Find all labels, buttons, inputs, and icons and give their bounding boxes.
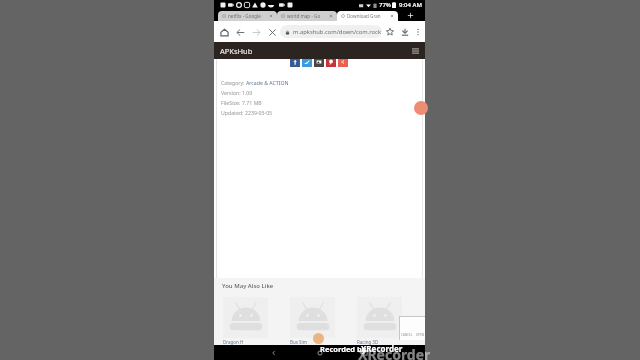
button[interactable]: More: [338, 57, 348, 67]
staticText: CANCEL: [401, 333, 413, 337]
button[interactable]: Stop loading: [264, 23, 280, 41]
staticText: 7.71 MB: [242, 99, 262, 106]
button[interactable]: More options: [412, 23, 423, 41]
button[interactable]: Dragon H: [223, 297, 268, 345]
button[interactable]: netflix - Google: [218, 11, 277, 21]
button[interactable]: Menu: [410, 45, 421, 56]
staticText: netflix - Google: [228, 13, 269, 19]
button[interactable]: New tab: [398, 10, 423, 21]
staticText: XRecorder: [358, 345, 431, 360]
button[interactable]: Home: [307, 345, 333, 360]
staticText: Category:: [221, 79, 246, 86]
staticText: FileSize:: [221, 99, 242, 106]
staticText: Arcade & ACTION: [246, 79, 289, 86]
button[interactable]: Back: [232, 23, 248, 41]
staticText: Racing 3D: [357, 339, 379, 345]
button[interactable]: APKsHub: [220, 42, 253, 59]
staticText: 77%: [379, 1, 391, 9]
button[interactable]: Chat: [414, 101, 428, 115]
button[interactable]: Share: [314, 57, 324, 67]
staticText: Version:: [221, 89, 242, 96]
staticText: APKsHub: [220, 46, 253, 56]
staticText: Bus Sim: [290, 339, 307, 345]
staticText: You May Also Like: [222, 282, 274, 290]
staticText: Download Gran: [347, 13, 390, 19]
staticText: OPEN: [416, 333, 425, 337]
staticText: Dragon H: [223, 339, 244, 345]
staticText: 9:04 AM: [399, 1, 422, 9]
staticText: 2239-05-05: [245, 109, 273, 116]
staticText: Updated:: [221, 109, 245, 116]
staticText: world map - Go: [287, 13, 329, 19]
button[interactable]: m.apkshub.com/down/com.rock: [280, 25, 382, 38]
button[interactable]: Downloads: [397, 23, 412, 41]
staticText: Recorded by: [320, 344, 366, 354]
button[interactable]: Pinterest: [326, 57, 336, 67]
button[interactable]: Forward: [248, 23, 264, 41]
button[interactable]: Bus Sim: [290, 297, 335, 345]
button[interactable]: Home: [216, 23, 232, 41]
button[interactable]: world map - Go: [277, 11, 337, 21]
staticText: XRecorder: [361, 343, 403, 354]
button[interactable]: Recent apps: [352, 345, 378, 360]
button[interactable]: Racing 3D: [357, 297, 402, 345]
button[interactable]: Bookmark: [382, 23, 397, 41]
button[interactable]: Download Gran: [337, 11, 398, 21]
staticText: 1.09: [242, 89, 253, 96]
button[interactable]: Twitter: [302, 57, 312, 67]
button[interactable]: Back: [261, 345, 287, 360]
button[interactable]: CANCEL: [400, 317, 425, 340]
button[interactable]: Facebook: [290, 57, 300, 67]
staticText: m.apkshub.com/down/com.rock: [293, 28, 381, 36]
